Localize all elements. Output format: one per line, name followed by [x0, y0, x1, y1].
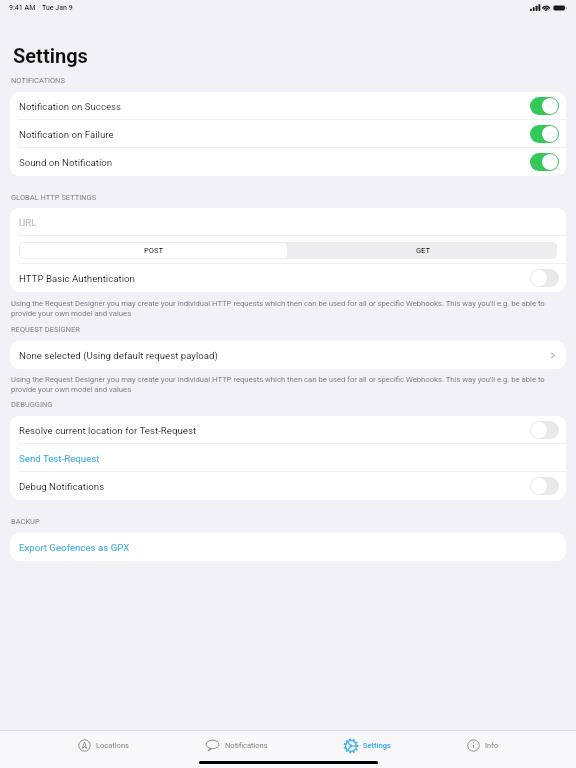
staticText: Export Geofences as GPX — [19, 542, 130, 553]
button[interactable]: Resolve current location for Test-Reques… — [10, 416, 566, 444]
staticText: Locations — [96, 741, 129, 750]
button[interactable]: GET — [288, 242, 557, 259]
button[interactable]: HTTP Basic Authentication — [10, 264, 566, 292]
staticText: Sound on Notification — [19, 157, 113, 168]
button[interactable]: None selected (Using default request pay… — [10, 341, 566, 369]
staticText: Notifications — [225, 741, 268, 750]
staticText: Notification on Failure — [19, 129, 114, 140]
staticText: Using the Request Designer you may creat… — [11, 375, 554, 394]
button[interactable]: Sound on Notification — [530, 153, 559, 171]
button[interactable]: Settings — [344, 731, 391, 760]
staticText: DEBUGGING — [11, 400, 53, 409]
button[interactable]: Notification on Failure — [10, 120, 566, 148]
staticText: URL — [19, 217, 37, 228]
button[interactable]: Debug Notifications — [10, 472, 566, 500]
staticText: NOTIFICATIONS — [11, 76, 65, 85]
button[interactable]: POST — [20, 243, 287, 258]
staticText: POST — [144, 246, 164, 255]
staticText: 9:41 AM — [9, 4, 36, 12]
button[interactable]: Notifications — [205, 731, 268, 760]
button[interactable]: Send Test-Request — [10, 444, 566, 472]
staticText: GLOBAL HTTP SETTINGS — [11, 193, 97, 202]
staticText: Settings — [363, 741, 391, 750]
button[interactable]: Sound on Notification — [10, 148, 566, 176]
button[interactable]: Notification on Failure — [530, 125, 559, 143]
staticText: Info — [485, 741, 499, 750]
staticText: BACKUP — [11, 517, 40, 526]
button[interactable]: Notification on Success — [10, 92, 566, 120]
staticText: Debug Notifications — [19, 481, 105, 492]
staticText: Settings — [13, 44, 88, 67]
button[interactable]: Locations — [78, 731, 129, 760]
staticText: Resolve current location for Test-Reques… — [19, 425, 197, 436]
button[interactable]: URL — [10, 208, 566, 236]
staticText: Using the Request Designer you may creat… — [11, 299, 554, 318]
button[interactable]: Info — [467, 731, 499, 760]
staticText: HTTP Basic Authentication — [19, 273, 135, 284]
button[interactable]: HTTP Basic Authentication — [530, 269, 559, 287]
button[interactable]: Debug Notifications — [530, 477, 559, 495]
staticText: None selected (Using default request pay… — [19, 350, 218, 361]
button[interactable]: Export Geofences as GPX — [10, 533, 566, 561]
button[interactable]: Notification on Success — [530, 97, 559, 115]
staticText: Notification on Success — [19, 101, 122, 112]
staticText: Send Test-Request — [19, 453, 100, 464]
staticText: REQUEST DESIGNER — [11, 325, 80, 334]
button[interactable]: Resolve current location for Test-Reques… — [530, 421, 559, 439]
staticText: GET — [416, 246, 430, 255]
staticText: Tue Jan 9 — [42, 4, 73, 12]
